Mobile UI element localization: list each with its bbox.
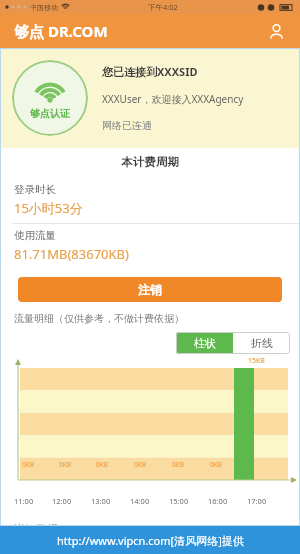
staticText: 13:00: [91, 496, 111, 506]
button[interactable]: 折线: [233, 332, 290, 354]
staticText: http://www.vipcn.com[清风网络]提供: [57, 533, 244, 548]
staticText: 0KB: [22, 460, 34, 469]
staticText: 15:00: [169, 496, 189, 506]
staticText: 14:00: [130, 496, 150, 506]
staticText: 注销: [138, 282, 162, 297]
staticText: 15小时53分: [14, 199, 83, 217]
staticText: 登录时长: [14, 183, 56, 196]
button[interactable]: 使用流量: [0, 224, 300, 269]
button[interactable]: 柱状: [176, 332, 233, 354]
staticText: 下午4:02: [148, 2, 178, 12]
staticText: 使用流量: [14, 229, 56, 242]
staticText: 0KB: [134, 460, 146, 469]
staticText: 12:00: [52, 496, 72, 506]
staticText: 中国移动: [30, 3, 58, 12]
staticText: 15KB: [248, 356, 265, 366]
staticText: 详细数据: [14, 522, 58, 526]
staticText: 柱状: [194, 336, 216, 350]
button[interactable]: Account: [262, 17, 290, 45]
button[interactable]: 登录时长: [0, 178, 300, 223]
staticText: 16:00: [208, 496, 228, 506]
staticText: 折线: [251, 336, 273, 350]
staticText: 0KB: [210, 460, 222, 469]
staticText: 网络已连通: [102, 119, 152, 132]
staticText: 81.71MB(83670KB): [14, 245, 129, 263]
staticText: 0KB: [172, 460, 184, 469]
staticText: 11:00: [14, 496, 34, 506]
staticText: 够点认证: [30, 107, 70, 120]
button[interactable]: 注销: [18, 277, 282, 302]
staticText: XXXUser，欢迎接入XXXAgency: [102, 92, 244, 106]
staticText: 够点 DR.COM: [14, 21, 108, 41]
staticText: 流量明细（仅供参考，不做计费依据）: [14, 312, 184, 325]
staticText: 本计费周期: [0, 155, 300, 169]
staticText: 0KB: [59, 460, 71, 469]
staticText: 17:00: [247, 496, 267, 506]
staticText: 0KB: [96, 460, 108, 469]
staticText: 您已连接到XXXSID: [102, 64, 198, 79]
